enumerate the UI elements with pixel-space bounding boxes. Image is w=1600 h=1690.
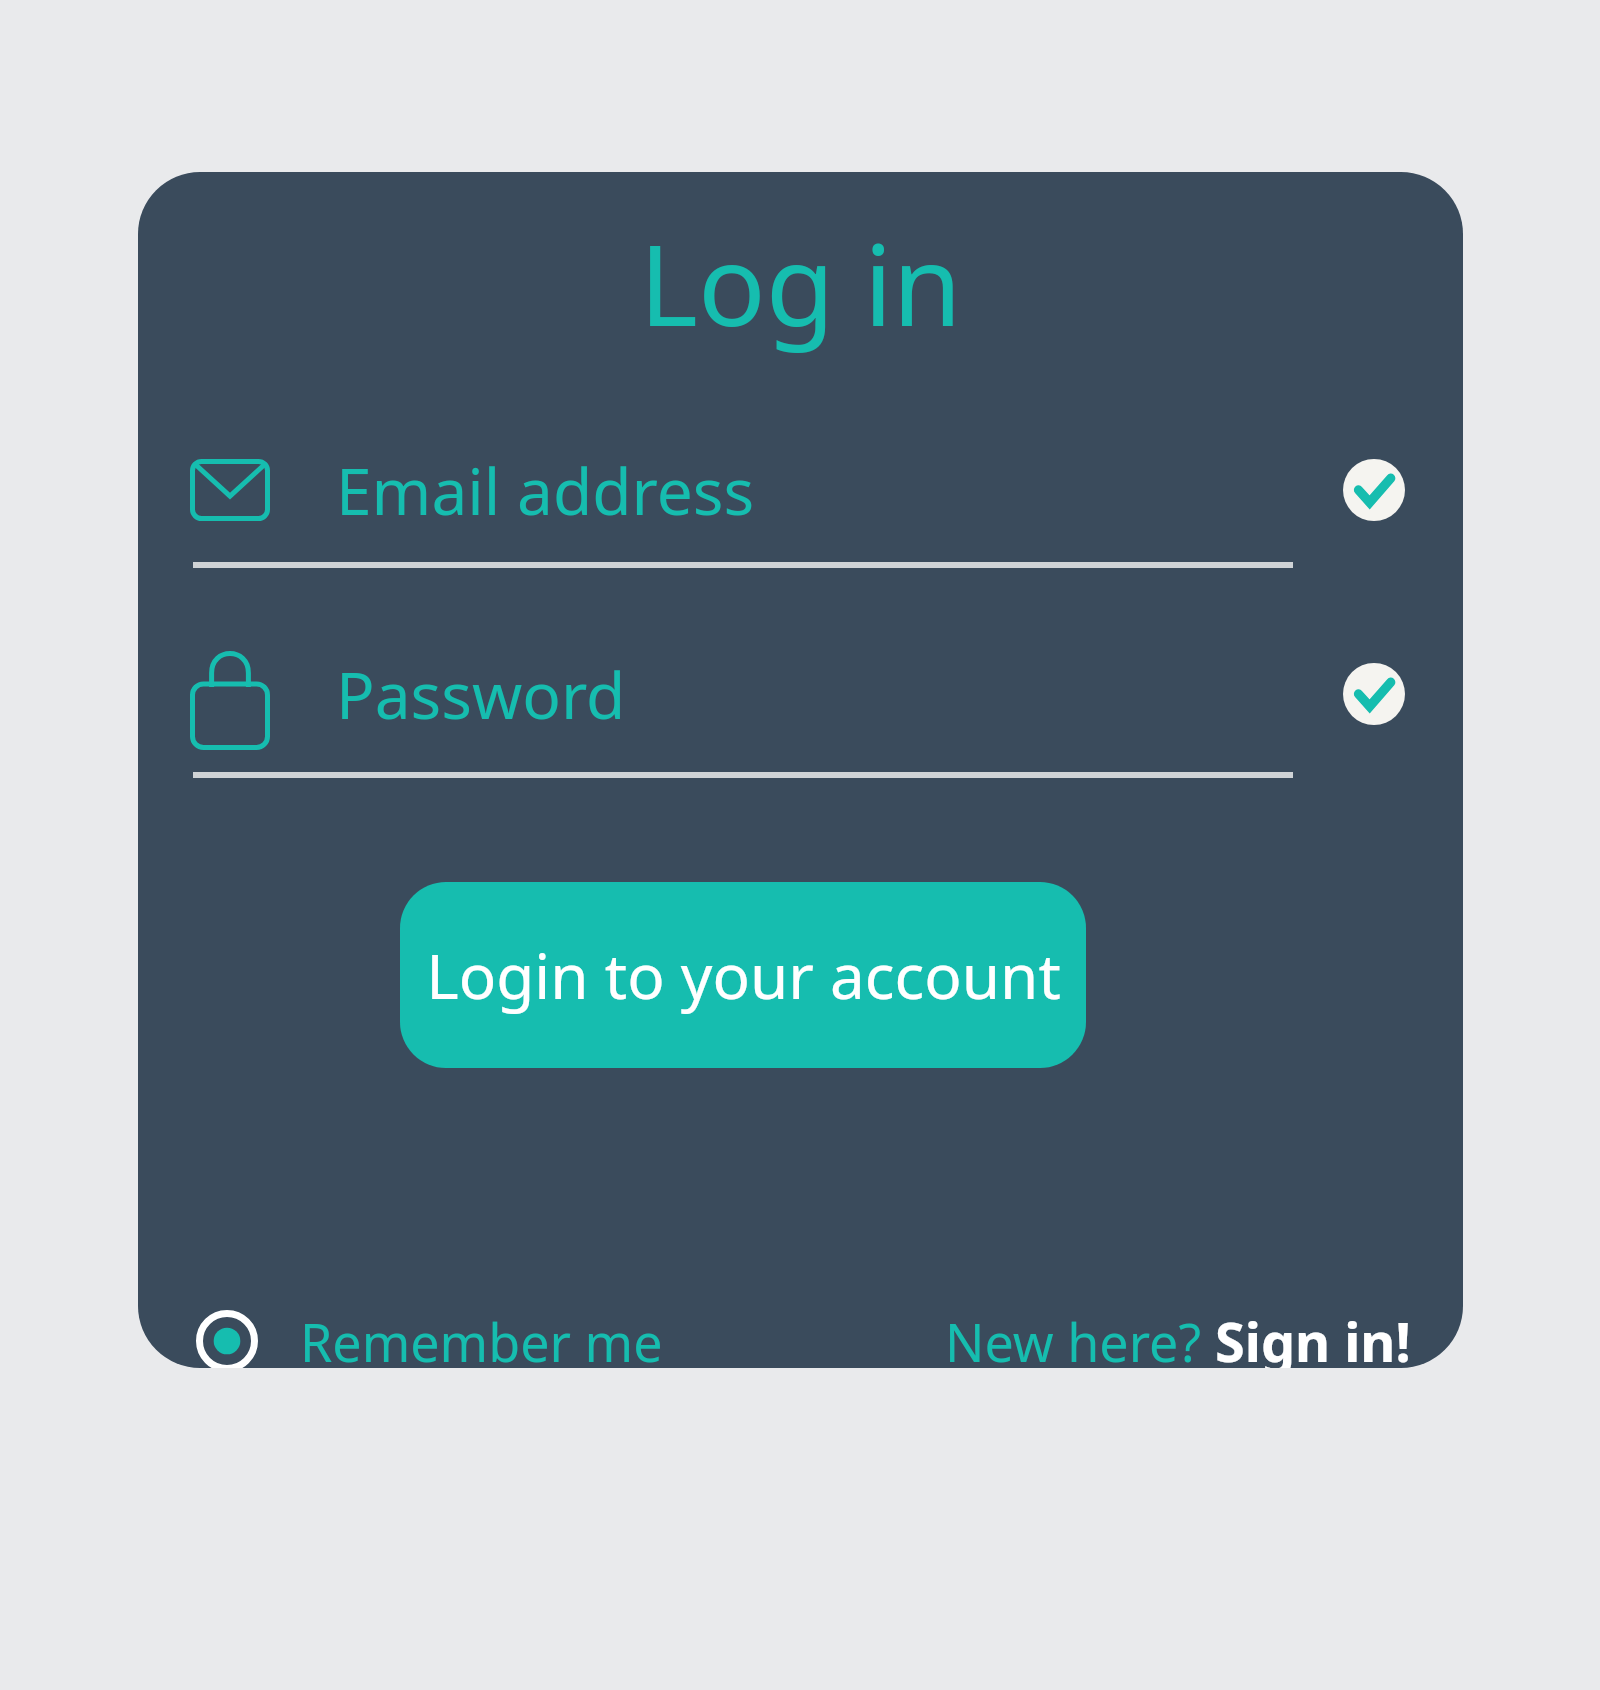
staticText: Sign in! bbox=[1215, 1304, 1411, 1368]
other: Password bbox=[190, 638, 270, 750]
staticText: New here? bbox=[945, 1306, 1215, 1368]
button[interactable]: Valid bbox=[1343, 663, 1405, 725]
staticText: Log in bbox=[138, 206, 1463, 359]
button[interactable]: Password bbox=[190, 624, 1405, 764]
button[interactable]: New here? bbox=[945, 1296, 1411, 1368]
staticText: Password bbox=[336, 651, 626, 738]
other: Email bbox=[190, 459, 270, 521]
staticText: Login to your account bbox=[426, 933, 1061, 1017]
staticText: Remember me bbox=[300, 1306, 663, 1368]
button[interactable]: Email bbox=[190, 434, 1405, 546]
staticText: Email address bbox=[336, 447, 755, 534]
button[interactable]: Login to your account bbox=[400, 882, 1086, 1068]
button[interactable]: Remember me bbox=[196, 1296, 663, 1368]
button[interactable]: Valid bbox=[1343, 459, 1405, 521]
